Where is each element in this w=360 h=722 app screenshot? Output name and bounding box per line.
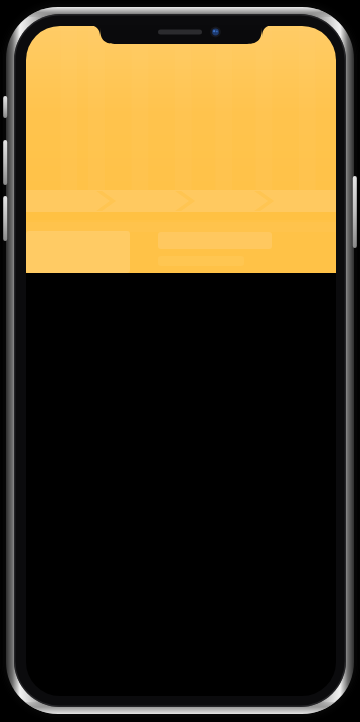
button[interactable]: Phone mockup showing app loading screen [0, 0, 360, 722]
